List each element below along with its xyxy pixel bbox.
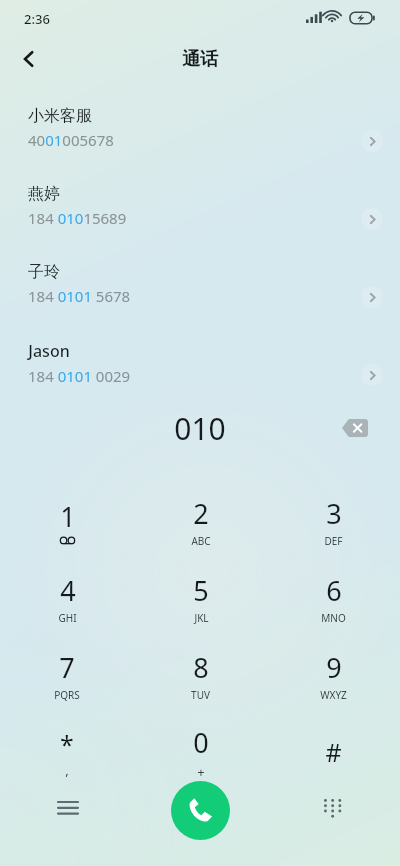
staticText: 燕婷 <box>28 184 60 204</box>
button[interactable]: Jason <box>0 334 400 412</box>
staticText: MNO <box>321 611 346 625</box>
button[interactable]: Dialpad <box>310 786 354 830</box>
staticText: 4 <box>60 572 76 609</box>
staticText: 6 <box>326 572 342 609</box>
staticText: 1 <box>60 498 76 535</box>
staticText: 8 <box>193 649 209 686</box>
staticText: 184 01015689 <box>28 208 127 228</box>
button[interactable]: # <box>267 714 400 791</box>
button[interactable]: Call <box>171 781 230 840</box>
staticText: TUV <box>191 688 210 702</box>
staticText: 7 <box>59 649 75 686</box>
staticText: 9 <box>326 649 342 686</box>
staticText: 184 0101 5678 <box>28 286 131 306</box>
staticText: ABC <box>191 534 211 548</box>
staticText: 5 <box>193 572 209 609</box>
button[interactable]: 8 <box>134 637 267 714</box>
staticText: 184 0101 0029 <box>28 366 131 386</box>
staticText: * <box>60 727 74 761</box>
button[interactable]: 1 <box>0 483 134 560</box>
button[interactable]: 7 <box>0 637 134 714</box>
staticText: 010 <box>174 408 226 449</box>
button[interactable]: 9 <box>267 637 400 714</box>
staticText: 4001005678 <box>28 130 114 150</box>
button[interactable]: * <box>0 714 134 791</box>
button[interactable]: 小米客服 <box>0 100 400 178</box>
staticText: 2:36 <box>24 10 50 28</box>
staticText: 通话 <box>182 48 218 71</box>
button[interactable]: Backspace <box>332 405 378 451</box>
staticText: 3 <box>326 495 342 532</box>
button[interactable]: Back <box>6 36 52 82</box>
staticText: , <box>65 761 69 779</box>
button[interactable]: 2 <box>134 483 267 560</box>
staticText: GHI <box>58 611 77 625</box>
staticText: Jason <box>28 340 70 362</box>
button[interactable]: 燕婷 <box>0 178 400 256</box>
button[interactable]: 4 <box>0 560 134 637</box>
staticText: 子玲 <box>28 262 60 282</box>
button[interactable]: 6 <box>267 560 400 637</box>
staticText: 0 <box>193 724 209 761</box>
staticText: DEF <box>324 534 343 548</box>
staticText: PQRS <box>54 688 80 702</box>
button[interactable]: 3 <box>267 483 400 560</box>
button[interactable]: 子玲 <box>0 256 400 334</box>
button[interactable]: 5 <box>134 560 267 637</box>
staticText: + <box>197 763 205 781</box>
button[interactable]: Call log menu <box>46 786 90 830</box>
staticText: 2 <box>193 495 209 532</box>
staticText: # <box>325 735 342 769</box>
staticText: WXYZ <box>320 688 347 702</box>
button[interactable]: 0 <box>134 714 267 791</box>
staticText: 小米客服 <box>28 106 92 126</box>
staticText: JKL <box>194 611 209 625</box>
